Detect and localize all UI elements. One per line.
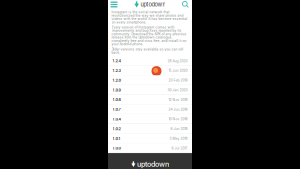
staticText: Every version of Instagram comes with im… xyxy=(111,25,186,46)
button[interactable]: 1.2.3 xyxy=(108,66,192,75)
staticText: 1.0.4 xyxy=(112,117,121,121)
button[interactable]: Menu xyxy=(108,0,119,9)
staticText: uptodown xyxy=(137,160,169,169)
staticText: 20 Feb 2019 xyxy=(168,78,187,82)
staticText: Instagram is the social network that rev… xyxy=(111,10,187,24)
staticText: 1.2.3 xyxy=(112,68,120,73)
staticText: 1.0.1 xyxy=(112,136,120,141)
staticText: 1.0.2 xyxy=(112,126,120,131)
staticText: 1.0.8 xyxy=(112,97,120,102)
staticText: uptodown xyxy=(140,1,165,8)
staticText: 1.2.0 xyxy=(112,78,121,83)
button[interactable]: 1.0.8 xyxy=(108,95,192,105)
button[interactable]: Search xyxy=(180,0,191,9)
staticText: 1.0.0 xyxy=(112,146,121,151)
staticText: 15 Jun 2020 xyxy=(168,69,187,73)
staticText: 24 Jun 2019 xyxy=(168,107,187,111)
button[interactable]: 1.0.9 xyxy=(108,85,192,95)
button[interactable]: 1.0.7 xyxy=(108,105,192,114)
button[interactable]: 1.2.0 xyxy=(108,75,192,85)
button[interactable]: 1.0.1 xyxy=(108,134,192,143)
staticText: 6 Jun 2018 xyxy=(170,127,187,131)
button[interactable]: 1.0.2 xyxy=(108,124,192,134)
staticText: 1.0.7 xyxy=(112,107,120,112)
staticText: 30 Jan 2020 xyxy=(167,88,187,92)
button[interactable]: 1.0.4 xyxy=(108,114,192,124)
staticText: 1.2.4 xyxy=(112,59,121,63)
button[interactable]: 1.2.4 xyxy=(108,56,192,66)
staticText: 6 Jul 2017 xyxy=(171,146,187,150)
staticText: Older versions stay available so you can… xyxy=(111,47,183,54)
button[interactable]: 1.0.0 xyxy=(108,143,192,153)
staticText: 28 Aug 2020 xyxy=(167,59,187,63)
staticText: 1.0.9 xyxy=(112,88,120,92)
button[interactable]: Uptodown home xyxy=(134,0,165,9)
staticText: 3 May 2018 xyxy=(169,136,187,140)
staticText: 12 Nov 2019 xyxy=(168,98,187,102)
staticText: 10 Nov 2018 xyxy=(168,117,187,121)
